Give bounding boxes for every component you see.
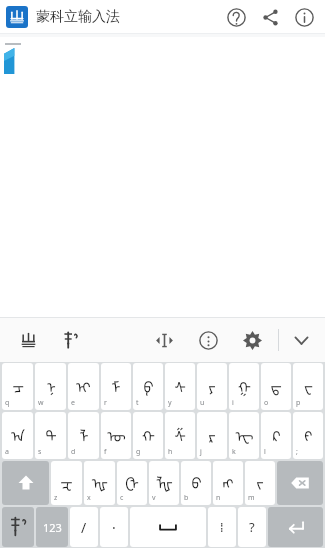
staticText: 蒙科立输入法 xyxy=(36,8,120,26)
staticText: ; xyxy=(296,447,298,457)
button[interactable]: Move cursor xyxy=(150,326,178,354)
button[interactable]: / xyxy=(70,507,98,547)
button[interactable]: ᠴ xyxy=(2,363,33,410)
button[interactable]: ᠯ xyxy=(68,412,99,459)
staticText: g xyxy=(136,447,141,457)
button[interactable]: Hide keyboard xyxy=(287,326,315,354)
button[interactable]: ᠹ xyxy=(133,363,163,410)
button[interactable]: ᠩ xyxy=(213,461,243,505)
staticText: a xyxy=(5,447,9,457)
button[interactable]: ᡀ xyxy=(149,461,179,505)
staticText: z xyxy=(54,493,58,503)
staticText: d xyxy=(71,447,76,457)
button[interactable] xyxy=(6,6,28,28)
button[interactable]: Backspace xyxy=(277,461,323,505)
staticText: ᠵ xyxy=(256,467,264,493)
staticText: w xyxy=(38,398,44,408)
button[interactable]: ᠿ xyxy=(117,461,147,505)
button[interactable]: ? xyxy=(238,507,266,547)
staticText: m xyxy=(248,493,255,503)
staticText: h xyxy=(168,447,173,457)
staticText: t xyxy=(136,398,139,408)
staticText: ᠯ xyxy=(79,420,89,446)
staticText: ᠪ xyxy=(191,467,202,493)
button[interactable]: Mongolian script xyxy=(2,507,34,547)
staticText: u xyxy=(200,398,205,408)
button[interactable]: Shift xyxy=(2,461,49,505)
button[interactable]: Share xyxy=(255,2,285,32)
staticText: k xyxy=(232,447,236,457)
button[interactable]: · xyxy=(100,507,128,547)
staticText: r xyxy=(104,398,107,408)
staticText: ᠸ xyxy=(304,371,313,397)
button[interactable]: Space xyxy=(130,507,206,547)
staticText: ᠻ xyxy=(304,420,313,446)
staticText: ᠶ xyxy=(208,371,216,397)
button[interactable]: ᠰ xyxy=(165,363,195,410)
staticText: y xyxy=(168,398,172,408)
button[interactable]: ᠮ xyxy=(101,363,131,410)
staticText: ᠮ xyxy=(111,371,121,397)
button[interactable]: Script mode xyxy=(56,326,84,354)
staticText: n xyxy=(216,493,221,503)
staticText: / xyxy=(81,518,87,537)
button[interactable]: Info xyxy=(289,2,319,32)
button[interactable]: ᠳ xyxy=(261,363,291,410)
button[interactable]: 123 xyxy=(36,507,68,547)
staticText: ᠥ xyxy=(107,420,126,446)
button[interactable]: Input method xyxy=(14,326,42,354)
staticText: i xyxy=(232,398,234,408)
staticText: ᠭ xyxy=(238,371,251,397)
button[interactable]: Emoji xyxy=(194,326,222,354)
staticText: ᠰ xyxy=(174,371,186,397)
button[interactable]: ᠪ xyxy=(181,461,211,505)
staticText: l xyxy=(264,447,266,457)
staticText: ⁞ xyxy=(220,518,224,536)
staticText: ᠨ xyxy=(46,371,56,397)
button[interactable]: ᠥ xyxy=(101,412,131,459)
button[interactable]: ⁞ xyxy=(208,507,236,547)
button[interactable]: ᠱ xyxy=(165,412,195,459)
staticText: c xyxy=(120,493,124,503)
button[interactable]: ᠶ xyxy=(197,363,227,410)
staticText: ᠽ xyxy=(60,467,73,493)
button[interactable]: ᠧ xyxy=(229,412,259,459)
button[interactable]: ᠠ xyxy=(2,412,33,459)
button[interactable]: Settings xyxy=(238,326,266,354)
staticText: f xyxy=(104,447,107,457)
staticText: x xyxy=(87,493,91,503)
staticText: s xyxy=(38,447,42,457)
button[interactable]: Enter xyxy=(268,507,323,547)
button[interactable]: ᠭ xyxy=(229,363,259,410)
staticText: ? xyxy=(249,518,255,536)
staticText: q xyxy=(5,398,10,408)
button[interactable]: ᠷ xyxy=(197,412,227,459)
button[interactable]: ᠽ xyxy=(51,461,82,505)
staticText: ᠲ xyxy=(45,420,57,446)
staticText: b xyxy=(184,493,189,503)
staticText: ᠧ xyxy=(235,420,254,446)
staticText: ᠩ xyxy=(222,467,234,493)
staticText: j xyxy=(200,447,202,457)
button[interactable]: ᠾ xyxy=(84,461,115,505)
button[interactable]: ᠢ xyxy=(68,363,99,410)
staticText: ᠴ xyxy=(12,371,24,397)
button[interactable]: ᠸ xyxy=(293,363,323,410)
button[interactable]: Help xyxy=(221,2,251,32)
staticText: ᠠ xyxy=(11,420,25,446)
button[interactable]: ᠵ xyxy=(245,461,275,505)
button[interactable]: ᠺ xyxy=(261,412,291,459)
button[interactable]: ᠨ xyxy=(35,363,66,410)
button[interactable]: ᠲ xyxy=(35,412,66,459)
staticText: p xyxy=(296,398,301,408)
staticText: 123 xyxy=(43,520,62,535)
staticText: o xyxy=(264,398,269,408)
staticText: ᠢ xyxy=(76,371,91,397)
button[interactable]: ᠬ xyxy=(133,412,163,459)
staticText: v xyxy=(152,493,156,503)
staticText: ᠹ xyxy=(143,371,154,397)
staticText: ᠱ xyxy=(174,420,186,446)
button[interactable]: ᠻ xyxy=(293,412,323,459)
staticText: ᡀ xyxy=(156,467,173,493)
staticText: ᠿ xyxy=(125,467,139,493)
